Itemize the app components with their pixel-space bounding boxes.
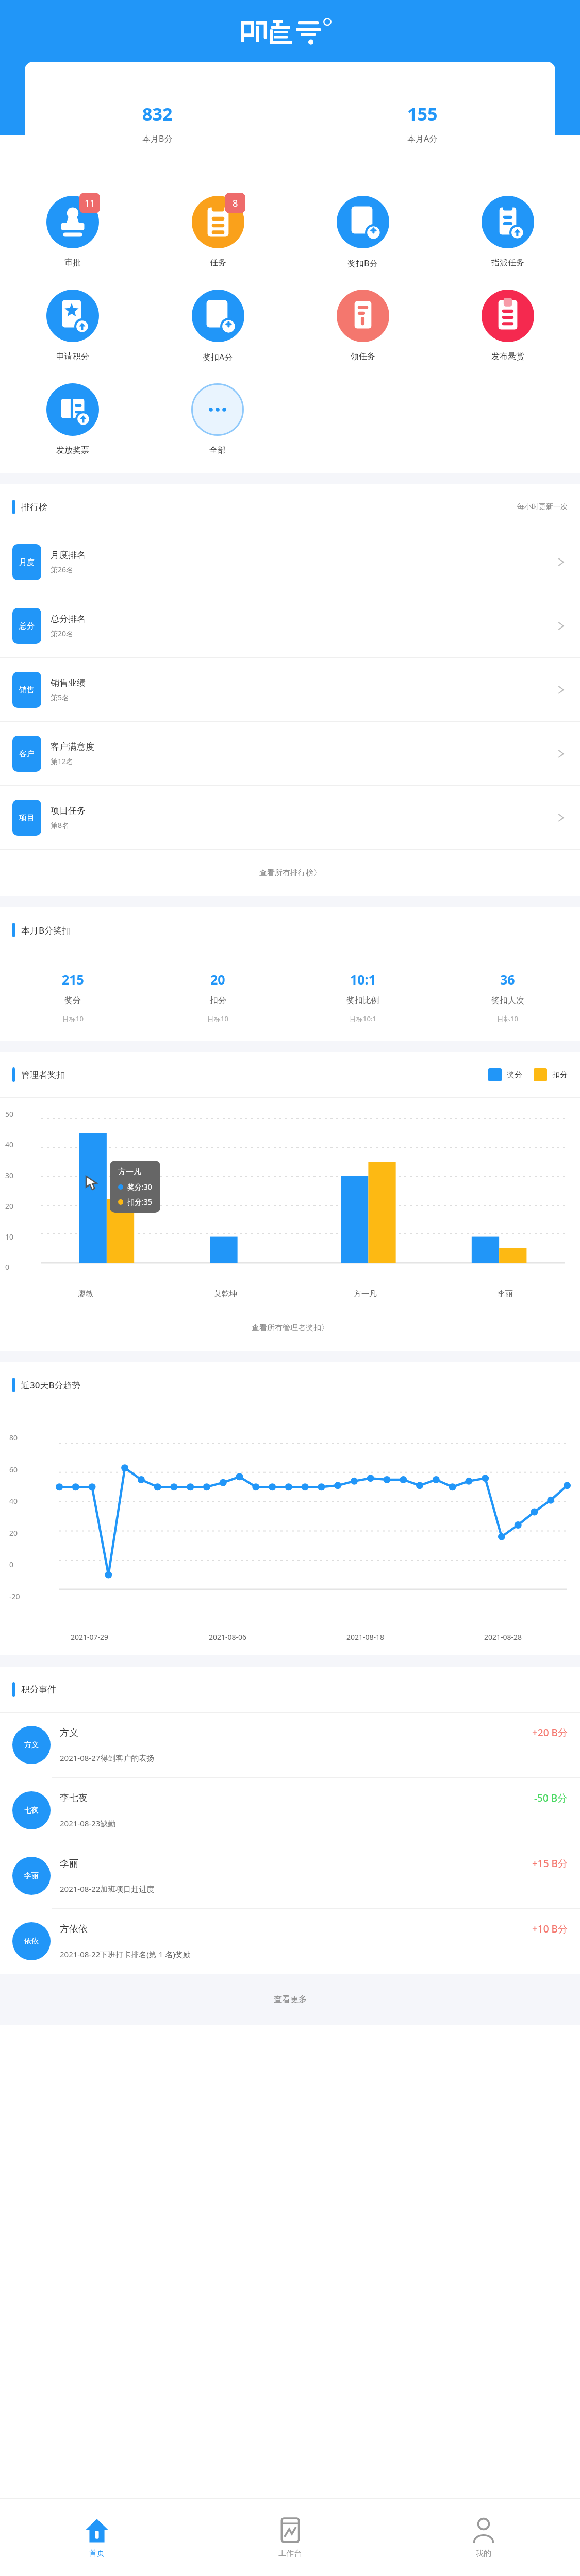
button[interactable]: 215	[0, 971, 145, 1023]
staticText: 20	[210, 971, 225, 988]
staticText: 项目任务	[51, 805, 86, 816]
staticText: 查看所有管理者奖扣〉	[252, 1323, 329, 1333]
button[interactable]: 方义	[0, 1713, 580, 1778]
staticText: 全部	[209, 445, 226, 455]
button[interactable]: 七夜	[0, 1778, 580, 1843]
button[interactable]: 发布悬赏	[435, 278, 580, 371]
staticText: 目标10	[62, 1014, 84, 1023]
staticText: 方一凡	[118, 1167, 141, 1177]
button[interactable]: 总分	[0, 594, 580, 658]
staticText: 李丽	[498, 1289, 513, 1299]
button[interactable]: 我的	[387, 2499, 580, 2576]
staticText: +15 B分	[532, 1857, 568, 1870]
button[interactable]: 客户	[0, 722, 580, 786]
staticText: 目标10:1	[350, 1014, 376, 1023]
button[interactable]: 全部	[145, 372, 290, 465]
staticText: 832	[142, 102, 173, 126]
button[interactable]: 20	[145, 971, 290, 1023]
staticText: 扣分:35	[127, 1197, 152, 1207]
staticText: 查看所有排行榜〉	[259, 868, 321, 878]
staticText: 扣分	[552, 1070, 568, 1080]
staticText: 奖扣比例	[346, 995, 379, 1006]
button[interactable]: 发放奖票	[0, 372, 145, 465]
staticText: 0	[9, 1560, 14, 1569]
button[interactable]: 查看更多	[0, 1974, 580, 2025]
staticText: 奖分:30	[127, 1182, 152, 1192]
staticText: 每小时更新一次	[517, 502, 568, 512]
staticText: 60	[9, 1465, 18, 1475]
button[interactable]: 11	[0, 184, 145, 277]
button[interactable]: 依依	[0, 1909, 580, 1974]
staticText: 11	[85, 197, 95, 210]
button[interactable]: 李丽	[0, 1843, 580, 1909]
staticText: 工作台	[278, 2549, 302, 2558]
staticText: 指派任务	[491, 258, 524, 268]
staticText: 奖分	[64, 995, 81, 1006]
staticText: -50 B分	[534, 1791, 568, 1805]
button[interactable]: 查看所有排行榜〉	[0, 850, 580, 896]
staticText: 任务	[210, 258, 226, 268]
button[interactable]: 奖扣B分	[290, 184, 435, 278]
button[interactable]: 查看所有管理者奖扣〉	[0, 1304, 580, 1351]
button[interactable]: 工作台	[193, 2499, 387, 2576]
staticText: 管理者奖扣	[21, 1070, 65, 1080]
staticText: +10 B分	[532, 1922, 568, 1936]
button[interactable]: 832	[25, 102, 290, 144]
staticText: 第20名	[51, 629, 74, 638]
staticText: 目标10	[497, 1014, 518, 1023]
button[interactable]: 月度	[0, 530, 580, 594]
button[interactable]: 36	[435, 971, 580, 1023]
staticText: 项目	[19, 813, 35, 823]
staticText: 第5名	[51, 692, 70, 702]
button[interactable]: 10:1	[290, 971, 435, 1023]
staticText: 客户满意度	[51, 741, 94, 752]
staticText: 215	[62, 971, 84, 988]
staticText: 8	[233, 197, 238, 210]
staticText: 方义	[24, 1740, 39, 1750]
staticText: 40	[9, 1496, 18, 1506]
staticText: 2021-08-27得到客户的表扬	[60, 1753, 155, 1763]
staticText: 20	[5, 1201, 14, 1211]
staticText: 总分排名	[51, 614, 86, 624]
staticText: 扣分	[210, 995, 226, 1006]
button[interactable]: 领任务	[290, 278, 435, 371]
staticText: 155	[407, 102, 438, 126]
staticText: 申请积分	[56, 351, 89, 362]
staticText: 查看更多	[274, 1994, 307, 2005]
staticText: 2021-08-06	[209, 1632, 247, 1642]
staticText: 2021-07-29	[71, 1632, 109, 1642]
staticText: 发放奖票	[56, 445, 89, 455]
staticText: 20	[9, 1528, 18, 1538]
staticText: 积分事件	[21, 1684, 56, 1695]
staticText: 发布悬赏	[491, 351, 524, 362]
button[interactable]: 8	[145, 184, 290, 277]
staticText: 客户	[19, 749, 35, 759]
button[interactable]: 奖扣A分	[145, 278, 290, 372]
button[interactable]: 155	[290, 102, 555, 144]
staticText: 36	[500, 971, 515, 988]
staticText: 销售业绩	[51, 677, 86, 688]
staticText: 2021-08-18	[346, 1632, 385, 1642]
button[interactable]: 指派任务	[435, 184, 580, 277]
button[interactable]: 首页	[0, 2499, 193, 2576]
button[interactable]: 申请积分	[0, 278, 145, 371]
staticText: 奖分	[507, 1070, 522, 1080]
staticText: 10:1	[350, 971, 376, 988]
button[interactable]: 销售	[0, 658, 580, 722]
staticText: 我的	[476, 2549, 491, 2558]
staticText: 李丽	[60, 1858, 532, 1870]
staticText: 50	[5, 1109, 14, 1119]
staticText: 0	[5, 1262, 10, 1272]
staticText: 80	[9, 1433, 18, 1443]
staticText: 方依依	[60, 1923, 532, 1935]
staticText: +20 B分	[532, 1726, 568, 1739]
staticText: 10	[5, 1232, 14, 1242]
staticText: 莫乾坤	[214, 1289, 237, 1299]
staticText: 近30天B分趋势	[21, 1379, 81, 1391]
staticText: 七夜	[24, 1806, 39, 1815]
staticText: 月度	[19, 557, 35, 567]
staticText: 奖扣人次	[491, 995, 524, 1006]
staticText: 审批	[64, 258, 81, 268]
staticText: 李丽	[24, 1871, 39, 1880]
button[interactable]: 项目	[0, 786, 580, 849]
